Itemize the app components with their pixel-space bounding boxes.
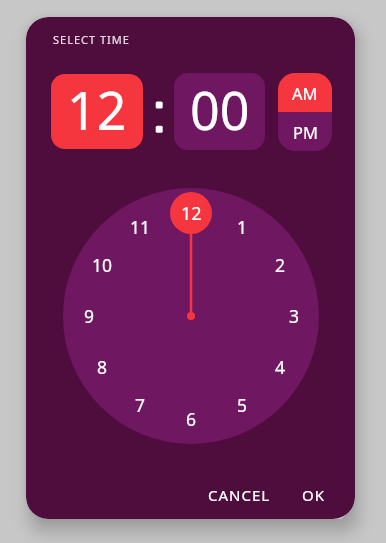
button[interactable]: 6 — [175, 403, 207, 435]
button[interactable]: 10 — [86, 249, 118, 281]
button[interactable]: AM — [278, 73, 332, 112]
button[interactable]: 3 — [278, 300, 310, 332]
staticText: 6 — [186, 407, 197, 431]
button[interactable]: 5 — [226, 389, 258, 421]
button[interactable]: 00 — [174, 73, 265, 150]
button[interactable]: 12 — [170, 192, 212, 234]
staticText: 12 — [67, 74, 127, 145]
button[interactable]: 9 — [73, 300, 105, 332]
staticText: 4 — [275, 355, 286, 379]
button[interactable]: 4 — [264, 351, 296, 383]
button[interactable]: 8 — [86, 351, 118, 383]
button[interactable]: 2 — [264, 249, 296, 281]
button[interactable]: CANCEL — [195, 477, 283, 513]
button[interactable]: 1 — [226, 211, 258, 243]
staticText: CANCEL — [208, 485, 271, 505]
staticText: PM — [293, 121, 318, 143]
staticText: 7 — [135, 393, 146, 417]
staticText: 11 — [130, 215, 151, 239]
staticText: 10 — [92, 253, 113, 277]
button[interactable]: 7 — [124, 389, 156, 421]
button[interactable]: 12 — [51, 74, 143, 149]
staticText: OK — [302, 485, 326, 505]
staticText: SELECT TIME — [53, 32, 130, 47]
staticText: 9 — [84, 304, 95, 328]
staticText: 00 — [190, 74, 250, 145]
staticText: 8 — [97, 355, 108, 379]
button[interactable]: PM — [278, 112, 332, 151]
button[interactable]: OK — [294, 477, 334, 513]
staticText: 5 — [237, 393, 248, 417]
button[interactable]: 11 — [124, 211, 156, 243]
staticText: 2 — [275, 253, 286, 277]
staticText: 3 — [289, 304, 300, 328]
staticText: AM — [292, 82, 318, 104]
staticText: 12 — [181, 201, 202, 226]
staticText: 1 — [237, 215, 248, 239]
